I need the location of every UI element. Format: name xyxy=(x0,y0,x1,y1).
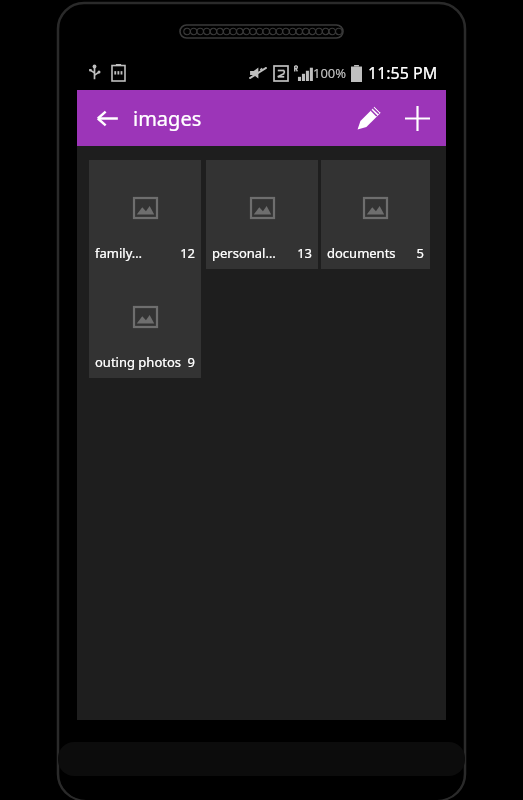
button[interactable]: personal… xyxy=(206,160,318,269)
staticText: personal… xyxy=(212,244,276,262)
staticText: 100% xyxy=(313,64,347,82)
button[interactable]: Rename xyxy=(345,94,393,142)
button[interactable]: family… xyxy=(89,160,201,269)
staticText: 12 xyxy=(180,244,195,262)
button[interactable]: Add xyxy=(393,94,441,142)
staticText: 13 xyxy=(297,244,312,262)
button[interactable]: outing photos xyxy=(89,269,201,378)
button[interactable]: documents xyxy=(321,160,430,269)
staticText: images xyxy=(133,105,202,132)
staticText: 11:55 PM xyxy=(368,62,438,84)
staticText: 5 xyxy=(416,244,424,262)
staticText: outing photos xyxy=(95,353,182,371)
button[interactable]: Back xyxy=(83,94,131,142)
staticText: family… xyxy=(95,244,143,262)
staticText: 9 xyxy=(187,353,195,371)
staticText: documents xyxy=(327,244,396,262)
